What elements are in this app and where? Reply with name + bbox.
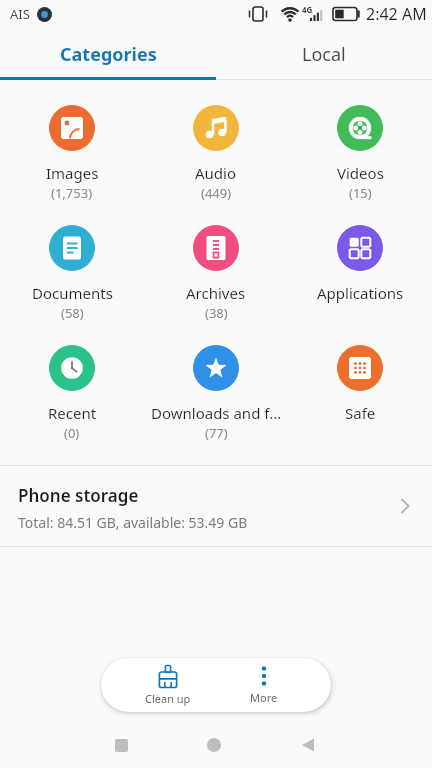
staticText: (15) bbox=[349, 184, 372, 202]
staticText: 2:42 AM bbox=[366, 3, 427, 25]
button[interactable]: Clean up bbox=[120, 658, 216, 712]
staticText: Archives bbox=[186, 283, 246, 303]
button[interactable]: Audio bbox=[144, 105, 288, 225]
staticText: Downloads and f... bbox=[151, 403, 282, 423]
staticText: (38) bbox=[205, 304, 228, 322]
staticText: Documents bbox=[32, 283, 113, 303]
staticText: (0) bbox=[64, 424, 80, 442]
button[interactable]: More bbox=[216, 658, 312, 712]
staticText: More bbox=[250, 690, 278, 705]
button[interactable]: Recent bbox=[0, 345, 144, 465]
staticText: (1,753) bbox=[51, 184, 93, 202]
staticText: 4G bbox=[302, 4, 313, 15]
staticText: Applications bbox=[317, 283, 404, 303]
button[interactable]: Archives bbox=[144, 225, 288, 345]
staticText: Total: 84.51 GB, available: 53.49 GB bbox=[18, 513, 248, 532]
button[interactable] bbox=[295, 732, 321, 758]
button[interactable]: Safe bbox=[288, 345, 432, 465]
button[interactable]: Videos bbox=[288, 105, 432, 225]
button[interactable]: Downloads and f... bbox=[144, 345, 288, 465]
button[interactable]: Categories bbox=[0, 28, 216, 80]
staticText: Audio bbox=[195, 163, 237, 183]
button[interactable]: Phone storage bbox=[0, 466, 432, 546]
staticText: Categories bbox=[60, 42, 157, 67]
staticText: Recent bbox=[48, 403, 97, 423]
staticText: (58) bbox=[61, 304, 84, 322]
staticText: AIS bbox=[10, 5, 30, 23]
button[interactable]: Images bbox=[0, 105, 144, 225]
button[interactable] bbox=[108, 732, 134, 758]
staticText: Phone storage bbox=[18, 484, 139, 507]
button[interactable]: Documents bbox=[0, 225, 144, 345]
staticText: Clean up bbox=[145, 691, 191, 706]
staticText: Safe bbox=[345, 403, 376, 423]
staticText: (77) bbox=[205, 424, 228, 442]
staticText: Videos bbox=[337, 163, 384, 183]
button[interactable]: Local bbox=[216, 28, 432, 80]
staticText: (449) bbox=[201, 184, 232, 202]
staticText: Local bbox=[302, 42, 346, 67]
button[interactable]: Applications bbox=[288, 225, 432, 345]
staticText: Images bbox=[46, 163, 99, 183]
button[interactable] bbox=[201, 732, 227, 758]
